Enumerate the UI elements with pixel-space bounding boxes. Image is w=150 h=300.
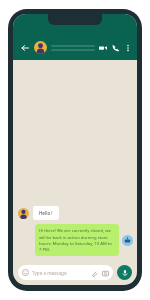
button[interactable]: Hi there! We are currently closed, we wi…	[35, 224, 119, 256]
staticText: Hi there! We are currently closed, we wi…	[39, 228, 115, 252]
staticText: Hello !	[39, 210, 53, 216]
button[interactable]: Type a message	[18, 265, 113, 280]
button[interactable]: Call	[110, 42, 121, 53]
button[interactable]: Video call	[97, 42, 108, 53]
button[interactable]	[51, 45, 97, 51]
staticText: Type a message	[32, 270, 67, 276]
button[interactable]: Camera	[101, 269, 109, 277]
button[interactable]: Attach file	[90, 269, 98, 277]
button[interactable]: Record voice message	[117, 265, 132, 280]
button[interactable]: Contact profile	[34, 41, 47, 54]
button[interactable]: More options	[123, 43, 132, 52]
button[interactable]: Hello !	[33, 206, 59, 220]
button[interactable]: Back	[18, 41, 31, 54]
